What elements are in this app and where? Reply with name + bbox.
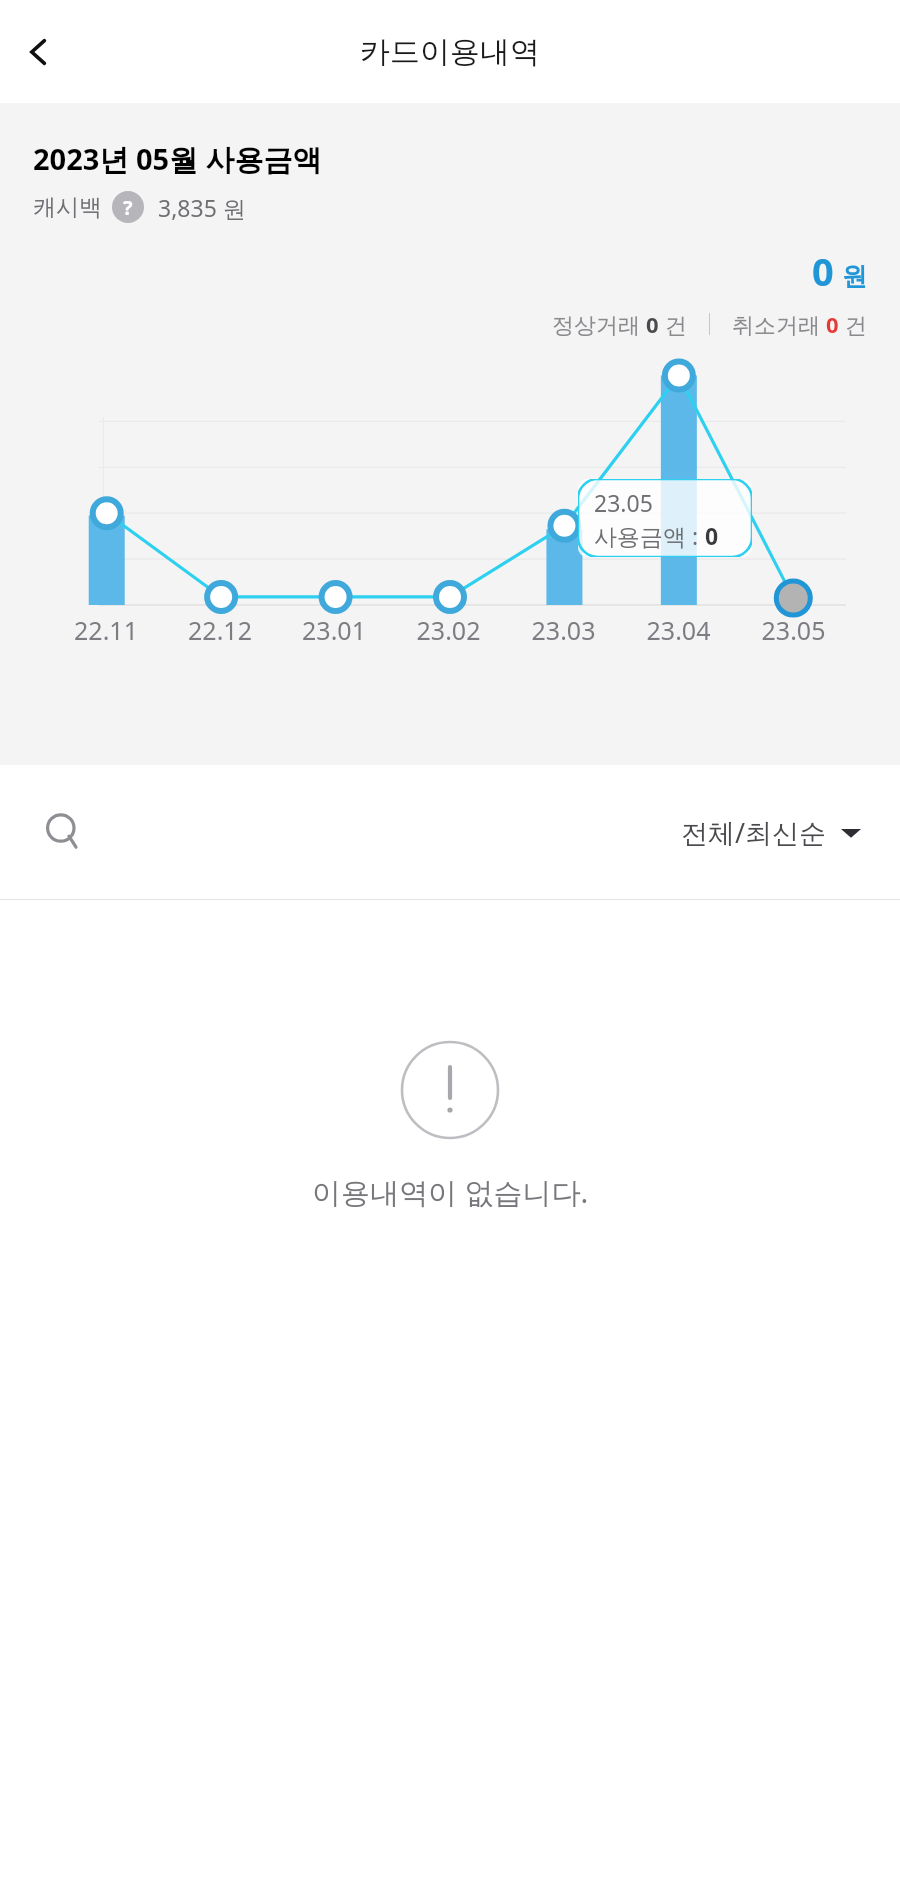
staticText: 사용금액 : xyxy=(594,520,705,551)
staticText: 캐시백 xyxy=(33,193,102,222)
staticText: 23.03 xyxy=(506,613,621,647)
staticText: 이용내역이 없습니다. xyxy=(312,1172,589,1212)
staticText: 0 xyxy=(646,309,659,339)
staticText: 23.02 xyxy=(391,613,506,647)
staticText: 23.05 xyxy=(594,487,653,518)
staticText: 정상거래 xyxy=(552,309,646,339)
staticText: 23.01 xyxy=(277,613,391,647)
staticText: 23.05 xyxy=(736,613,851,647)
staticText: 3,835 원 xyxy=(158,192,246,223)
staticText: 2023년 05월 사용금액 xyxy=(33,139,322,179)
staticText: 22.11 xyxy=(49,613,163,647)
staticText: 원 xyxy=(842,261,867,292)
button[interactable]: Search xyxy=(33,801,95,863)
button[interactable]: 캐시백 안내 xyxy=(112,191,144,223)
staticText: 23.04 xyxy=(621,613,736,647)
staticText: 0 xyxy=(812,245,834,297)
button[interactable]: Back xyxy=(10,23,68,81)
staticText: 건 xyxy=(659,309,687,339)
staticText: 취소거래 xyxy=(732,309,826,339)
staticText: ? xyxy=(123,194,133,221)
staticText: 0 xyxy=(705,520,719,551)
staticText: 카드이용내역 xyxy=(360,33,540,71)
button[interactable]: 전체/최신순 xyxy=(675,804,867,861)
staticText: 22.12 xyxy=(163,613,277,647)
staticText: 건 xyxy=(839,309,867,339)
staticText: 0 xyxy=(826,309,839,339)
staticText: 전체/최신순 xyxy=(681,814,827,851)
